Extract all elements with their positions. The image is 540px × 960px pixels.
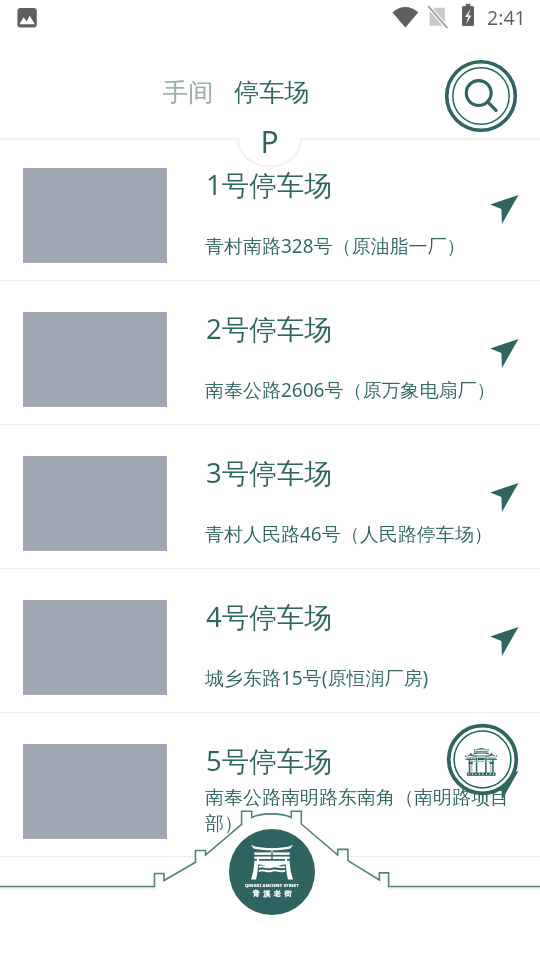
button[interactable]: Navigate [484,762,524,802]
button[interactable]: Qingxi Ancient Street logo [229,829,315,915]
staticText: 1号停车场 [206,166,332,204]
button[interactable]: 3号停车场 [0,425,540,569]
button[interactable]: Gate landmark [447,724,518,795]
button[interactable]: Navigate [484,474,524,514]
button[interactable]: 1号停车场 [0,137,540,281]
staticText: 南奉公路2606号（原万象电扇厂） [205,377,496,403]
staticText: 2:41 [487,4,526,31]
staticText: 青村南路328号（原油脂一厂） [205,233,466,259]
button[interactable]: Navigate [484,618,524,658]
button[interactable]: Search [443,58,519,134]
button[interactable]: 4号停车场 [0,569,540,713]
staticText: 南奉公路南明路东南角（南明路项目部） [205,786,516,835]
staticText: QINGXI ANCIENT STREET [229,883,315,888]
staticText: 2号停车场 [206,310,332,348]
staticText: 青村人民路46号（人民路停车场） [205,521,493,547]
staticText: 5号停车场 [206,742,332,780]
button[interactable]: 5号停车场 [0,713,540,857]
staticText: 停车场 [234,77,310,109]
button[interactable]: Navigate [484,186,524,226]
staticText: 城乡东路15号(原恒润厂房) [205,665,429,691]
staticText: 青 溪 老 街 [229,889,315,899]
button[interactable]: Navigate [484,330,524,370]
button[interactable]: 2号停车场 [0,281,540,425]
staticText: 4号停车场 [206,598,332,636]
staticText: 手间 [163,77,214,109]
staticText: P [238,121,301,162]
staticText: 3号停车场 [206,454,332,492]
